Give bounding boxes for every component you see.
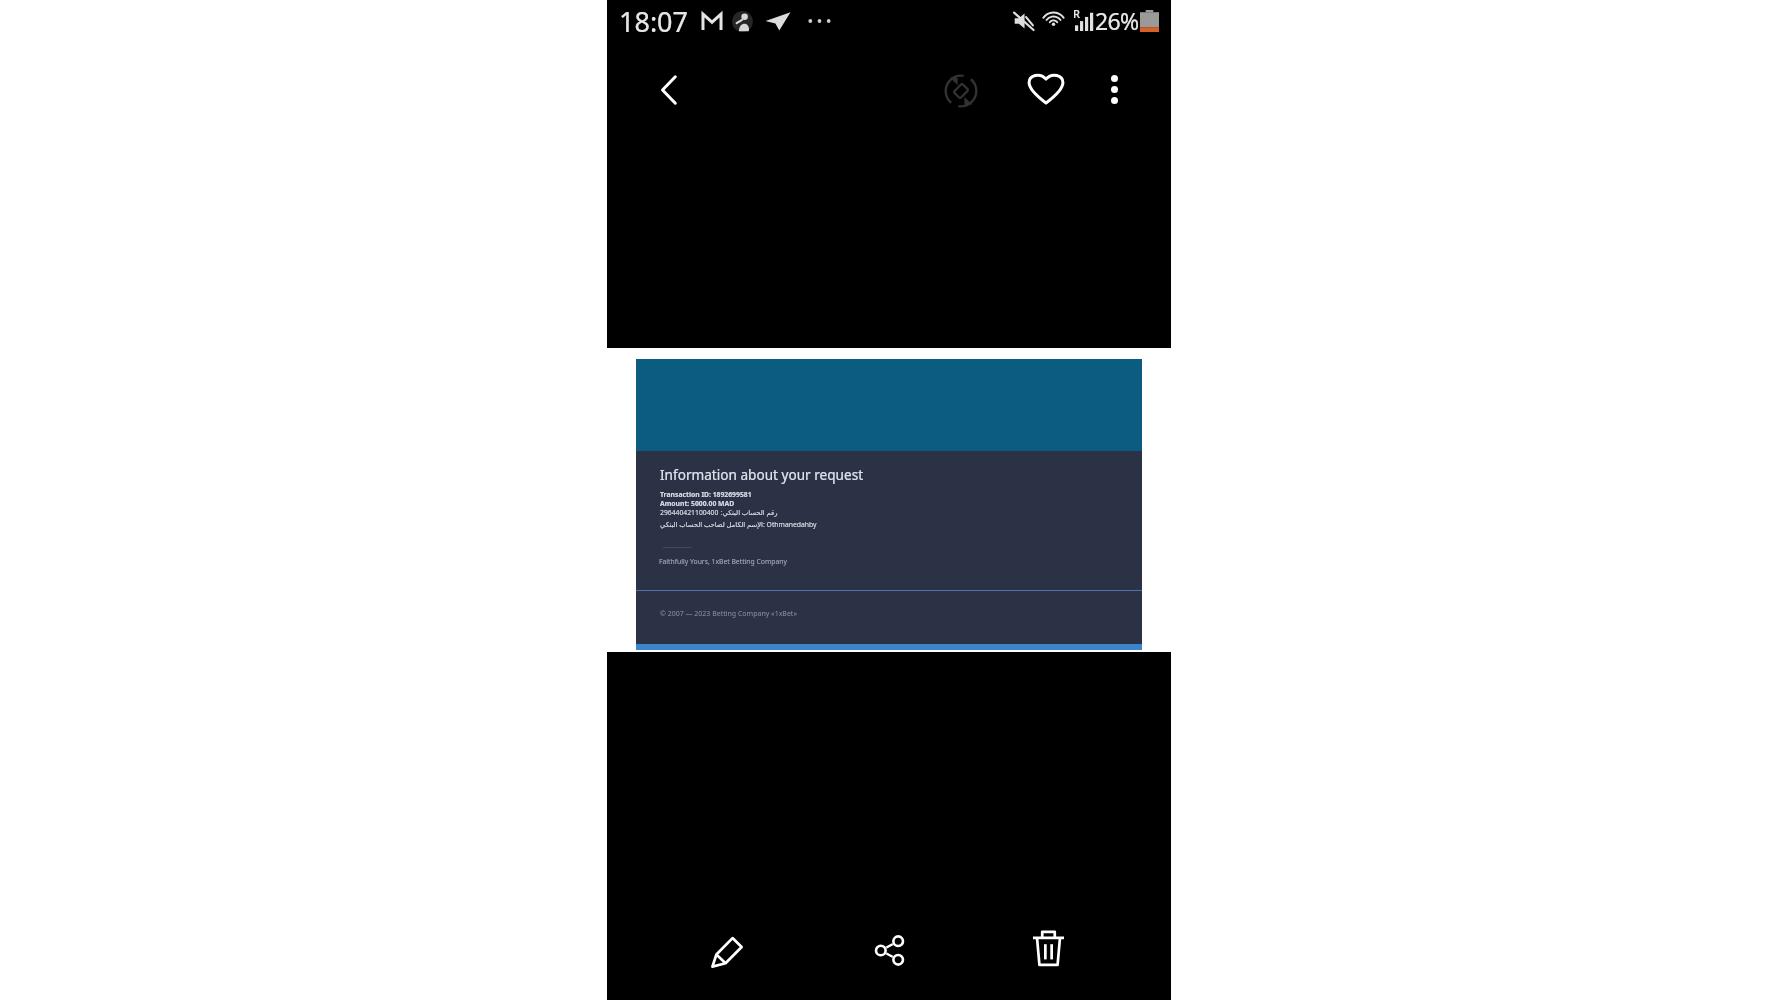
staticText: الإسم الكامل لصاحب الحساب البنكي (660, 520, 763, 529)
staticText: Transaction ID: 1892699581 (660, 490, 752, 499)
staticText: Information about your request (660, 465, 864, 484)
button[interactable]: Edit (700, 922, 756, 978)
button[interactable]: Delete (1020, 920, 1076, 976)
staticText: Faithfully Yours, 1xBet Betting Company (659, 557, 787, 566)
staticText: 296440421100400 (660, 508, 719, 517)
staticText: : Othmanedahby (763, 520, 817, 529)
staticText: 18:07 (619, 3, 689, 40)
staticText: R (1073, 6, 1080, 21)
button[interactable]: More options (1088, 63, 1140, 115)
button[interactable]: Auto rotate (944, 74, 978, 108)
staticText: 26% (1095, 5, 1139, 36)
button[interactable]: Share (861, 922, 917, 978)
staticText: © 2007 — 2023 Betting Company «1xBet» (660, 609, 797, 619)
staticText: Amount: 5000.00 MAD (660, 499, 735, 508)
staticText: :رقم الحساب البنكي (719, 508, 778, 517)
button[interactable]: Back (643, 64, 695, 116)
button[interactable]: Favorite (1020, 62, 1072, 114)
